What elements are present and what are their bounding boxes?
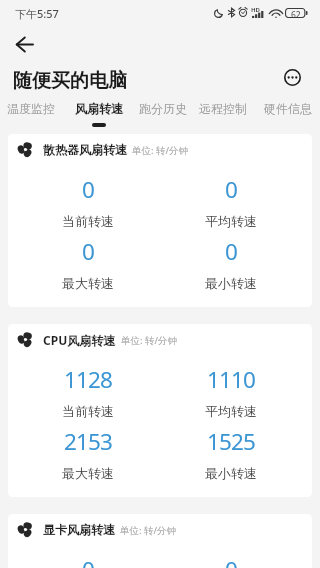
staticText: 0 <box>225 554 237 568</box>
staticText: 62 <box>291 9 301 21</box>
staticText: HD <box>251 6 260 14</box>
button[interactable]: CPU风扇转速 <box>8 324 312 497</box>
staticText: 2153 <box>64 426 112 457</box>
staticText: 0 <box>82 174 94 205</box>
staticText: 平均转速 <box>205 403 257 419</box>
staticText: 单位: 转/分钟 <box>120 524 177 537</box>
button[interactable]: More options <box>274 59 310 95</box>
staticText: 0 <box>225 236 237 267</box>
staticText: 单位: 转/分钟 <box>132 144 189 157</box>
staticText: 单位: 转/分钟 <box>121 334 178 347</box>
staticText: 下午5:57 <box>15 6 59 21</box>
staticText: 0 <box>82 554 94 568</box>
staticText: 风扇转速 <box>75 101 123 116</box>
button[interactable]: 散热器风扇转速 <box>8 134 312 307</box>
button[interactable]: 跑分历史 <box>136 98 190 127</box>
button[interactable]: Back <box>6 26 42 62</box>
button[interactable]: 显卡风扇转速 <box>8 514 312 568</box>
staticText: 散热器风扇转速 <box>43 142 127 157</box>
staticText: 0 <box>82 236 94 267</box>
staticText: 远程控制 <box>199 101 247 116</box>
staticText: CPU风扇转速 <box>43 332 116 348</box>
staticText: 显卡风扇转速 <box>43 522 115 537</box>
staticText: 0 <box>225 174 237 205</box>
staticText: 最大转速 <box>62 275 114 291</box>
staticText: 1525 <box>207 426 255 457</box>
staticText: 温度监控 <box>7 101 55 116</box>
staticText: 最小转速 <box>205 465 257 481</box>
staticText: 1110 <box>207 364 255 395</box>
button[interactable]: 远程控制 <box>196 98 250 127</box>
staticText: 跑分历史 <box>139 101 187 116</box>
staticText: 随便买的电脑 <box>13 69 127 93</box>
staticText: 当前转速 <box>62 403 114 419</box>
staticText: 平均转速 <box>205 213 257 229</box>
staticText: 最大转速 <box>62 465 114 481</box>
staticText: 硬件信息 <box>264 101 312 116</box>
staticText: 当前转速 <box>62 213 114 229</box>
button[interactable]: 硬件信息 <box>261 98 315 127</box>
staticText: 1128 <box>64 364 112 395</box>
staticText: 最小转速 <box>205 275 257 291</box>
button[interactable]: 温度监控 <box>4 98 58 127</box>
button[interactable]: 风扇转速 <box>72 98 126 127</box>
